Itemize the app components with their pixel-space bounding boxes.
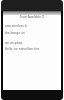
staticText: now wireless b [3,24,61,28]
staticText: Hello, no nanofiber the [3,47,61,51]
staticText: Scan Available D [3,15,61,19]
staticText: we un-phas [3,41,61,45]
staticText: the bongo un [3,31,61,35]
button[interactable] [3,11,61,15]
